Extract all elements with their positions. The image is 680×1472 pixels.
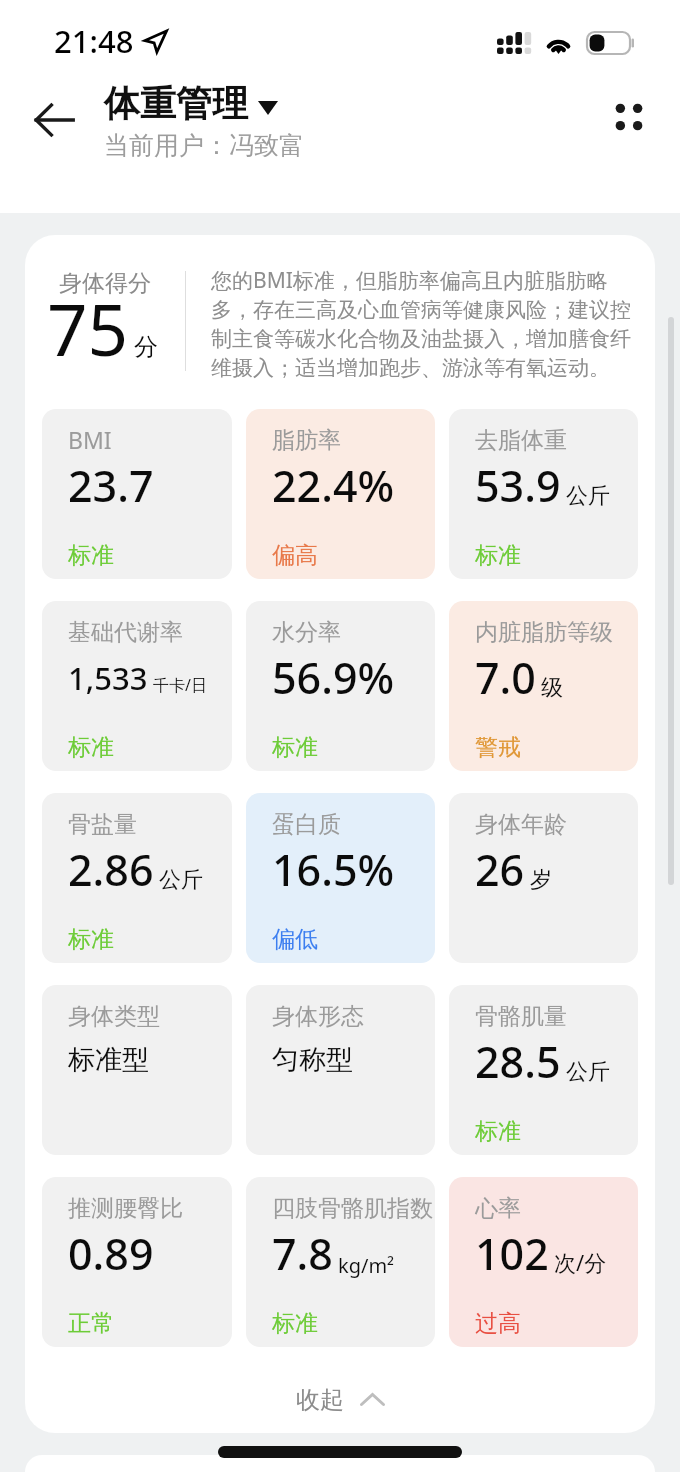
staticText: 标准 [272,735,318,762]
staticText: 骨盐量 [68,812,137,839]
staticText: 脂肪率 [272,428,341,455]
staticText: 体重管理 [104,84,248,127]
button[interactable]: 返回 [20,86,88,154]
staticText: 基础代谢率 [68,620,183,647]
button[interactable]: 去脂体重 [449,409,638,579]
button[interactable] [25,1455,655,1472]
staticText: 公斤 [566,1060,610,1086]
staticText: 水分率 [272,620,341,647]
button[interactable]: 骨盐量 [42,793,232,963]
staticText: 警戒 [475,735,521,762]
button[interactable]: 体重管理 [104,84,278,127]
staticText: 分 [134,334,158,362]
staticText: 56.9% [272,654,395,705]
staticText: 102 [475,1230,549,1281]
staticText: 过高 [475,1311,521,1338]
staticText: BMI [68,428,112,455]
staticText: 0.89 [68,1230,154,1281]
button[interactable]: 水分率 [246,601,435,771]
button[interactable]: BMI [42,409,232,579]
staticText: 16.5% [272,846,395,897]
button[interactable]: 内脏脂肪等级 [449,601,638,771]
staticText: 标准 [272,1311,318,1338]
staticText: 身体年龄 [475,812,567,839]
staticText: 骨骼肌量 [475,1004,567,1031]
staticText: 身体类型 [68,1004,160,1031]
staticText: kg/m² [338,1254,395,1278]
staticText: 推测腰臀比 [68,1196,183,1223]
staticText: 次/分 [554,1251,607,1278]
staticText: 蛋白质 [272,812,341,839]
staticText: 内脏脂肪等级 [475,620,613,647]
staticText: 正常 [68,1311,114,1338]
button[interactable]: 更多 [598,86,660,148]
staticText: 千卡/日 [153,676,207,696]
staticText: 28.5 [475,1038,561,1089]
staticText: 标准 [68,735,114,762]
staticText: 标准 [68,543,114,570]
staticText: 标准 [475,543,521,570]
staticText: 您的BMI标准，但脂肪率偏高且内脏脂肪略多，存在三高及心血管病等健康风险；建议控… [211,265,642,382]
button[interactable]: 脂肪率 [246,409,435,579]
button[interactable]: 蛋白质 [246,793,435,963]
staticText: 身体得分 [59,271,151,298]
staticText: 标准 [475,1119,521,1146]
staticText: 21:48 [54,24,134,61]
staticText: 标准型 [68,1045,149,1077]
staticText: 匀称型 [272,1045,353,1077]
staticText: 7.0 [475,654,536,705]
staticText: 去脂体重 [475,428,567,455]
staticText: 身体形态 [272,1004,364,1031]
staticText: 岁 [530,868,552,894]
staticText: 四肢骨骼肌指数 [272,1196,433,1223]
staticText: 53.9 [475,462,561,513]
staticText: 标准 [68,927,114,954]
button[interactable]: 推测腰臀比 [42,1177,232,1347]
staticText: 2.86 [68,846,154,897]
staticText: 7.8 [272,1230,333,1281]
button[interactable]: 收起 [25,1347,655,1433]
staticText: 偏高 [272,543,318,570]
staticText: 心率 [475,1196,521,1223]
button[interactable]: 四肢骨骼肌指数 [246,1177,435,1347]
staticText: 偏低 [272,927,318,954]
button[interactable]: 身体形态 [246,985,435,1155]
button[interactable]: 基础代谢率 [42,601,232,771]
button[interactable]: 骨骼肌量 [449,985,638,1155]
staticText: 收起 [296,1387,344,1415]
staticText: 26 [475,846,525,897]
staticText: 公斤 [159,868,203,894]
staticText: 当前用户：冯致富 [104,132,304,162]
staticText: 级 [541,676,563,702]
staticText: 22.4% [272,462,395,513]
staticText: 公斤 [566,484,610,510]
button[interactable]: 心率 [449,1177,638,1347]
button[interactable]: 身体类型 [42,985,232,1155]
staticText: 1,533 [68,661,148,698]
button[interactable]: 身体年龄 [449,793,638,963]
staticText: 23.7 [68,462,154,513]
staticText: 75 [47,289,129,374]
